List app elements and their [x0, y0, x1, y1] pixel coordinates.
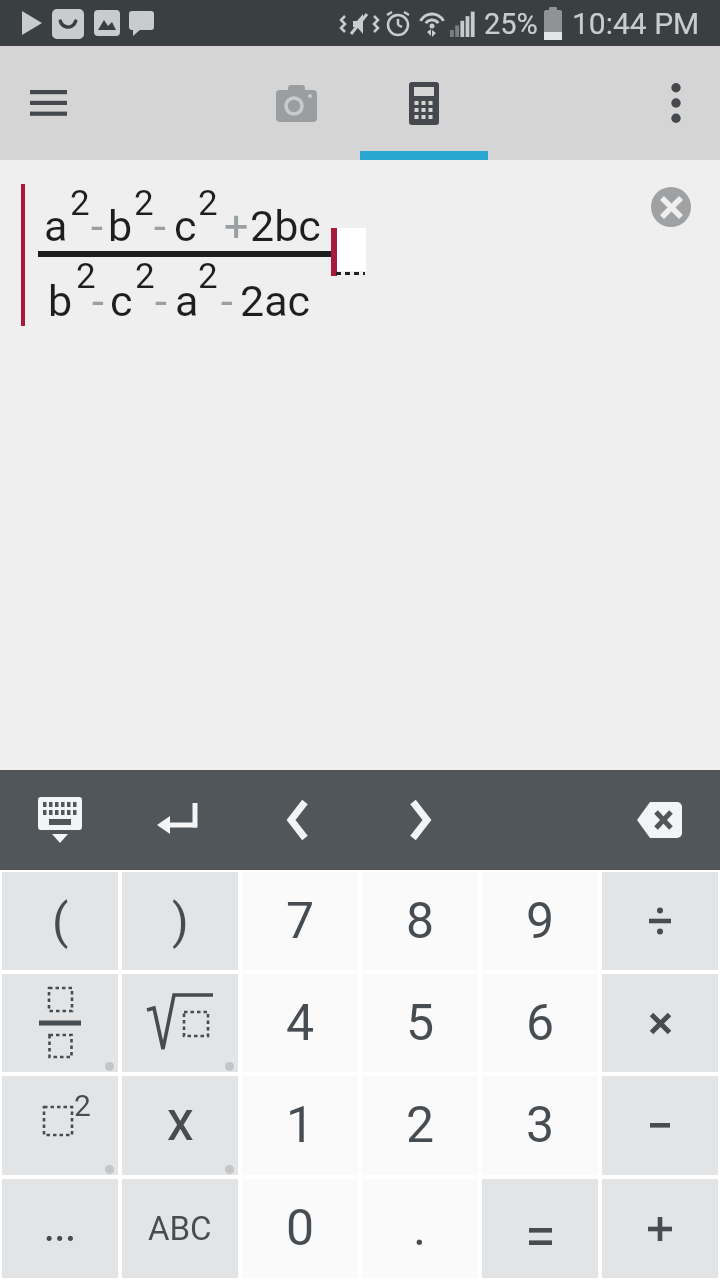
- staticText: 2: [198, 183, 218, 224]
- button[interactable]: [482, 1179, 598, 1278]
- button[interactable]: ): [122, 872, 238, 970]
- button[interactable]: [10, 770, 110, 870]
- staticText: 4: [286, 994, 315, 1053]
- button[interactable]: [654, 81, 698, 125]
- button[interactable]: [360, 46, 488, 160]
- button[interactable]: [602, 974, 718, 1072]
- button[interactable]: [2, 974, 118, 1072]
- staticText: 2ac: [240, 276, 311, 326]
- staticText: +: [224, 201, 249, 251]
- staticText: c: [110, 276, 133, 326]
- staticText: 25%: [484, 7, 538, 41]
- staticText: ...: [44, 1206, 76, 1251]
- button[interactable]: ABC: [122, 1179, 238, 1278]
- staticText: 2bc: [250, 201, 321, 251]
- button[interactable]: 1: [242, 1076, 358, 1175]
- staticText: 5: [406, 994, 435, 1053]
- button[interactable]: 5: [362, 974, 478, 1072]
- staticText: 2: [76, 256, 96, 297]
- staticText: 8: [406, 892, 435, 951]
- staticText: 7: [286, 892, 315, 951]
- button[interactable]: X: [122, 1076, 238, 1175]
- staticText: 2: [198, 256, 218, 297]
- button[interactable]: .: [362, 1179, 478, 1278]
- staticText: 2: [70, 183, 90, 224]
- button[interactable]: 8: [362, 872, 478, 970]
- staticText: 2: [134, 183, 154, 224]
- staticText: 2: [406, 1096, 435, 1155]
- staticText: 2: [74, 1088, 91, 1123]
- button[interactable]: [128, 770, 228, 870]
- button[interactable]: [602, 872, 718, 970]
- button[interactable]: [248, 770, 348, 870]
- staticText: .: [413, 1199, 427, 1258]
- button[interactable]: [609, 770, 709, 870]
- button[interactable]: 0: [242, 1179, 358, 1278]
- staticText: a: [175, 276, 199, 326]
- button[interactable]: 7: [242, 872, 358, 970]
- staticText: 1: [286, 1096, 315, 1155]
- staticText: -: [155, 276, 167, 326]
- button[interactable]: [602, 1076, 718, 1175]
- staticText: 6: [526, 994, 555, 1053]
- button[interactable]: 2: [2, 1076, 118, 1175]
- staticText: -: [221, 276, 233, 326]
- button[interactable]: 2: [362, 1076, 478, 1175]
- button[interactable]: [651, 187, 691, 227]
- staticText: -: [92, 276, 104, 326]
- button[interactable]: [370, 770, 470, 870]
- button[interactable]: [122, 974, 238, 1072]
- staticText: -: [154, 201, 166, 251]
- button[interactable]: 9: [482, 872, 598, 970]
- button[interactable]: 4: [242, 974, 358, 1072]
- staticText: -: [91, 201, 103, 251]
- button[interactable]: ...: [2, 1179, 118, 1278]
- staticText: 10:44 PM: [572, 6, 700, 41]
- button[interactable]: [232, 46, 360, 160]
- staticText: b: [48, 276, 73, 326]
- staticText: a: [44, 201, 68, 251]
- staticText: ABC: [148, 1209, 212, 1248]
- button[interactable]: (: [2, 872, 118, 970]
- staticText: X: [167, 1101, 194, 1150]
- staticText: c: [174, 201, 197, 251]
- staticText: 9: [526, 892, 555, 951]
- staticText: (: [52, 893, 69, 949]
- staticText: 0: [286, 1199, 315, 1258]
- button[interactable]: 6: [482, 974, 598, 1072]
- button[interactable]: 3: [482, 1076, 598, 1175]
- staticText: b: [108, 201, 133, 251]
- staticText: ): [172, 893, 189, 949]
- staticText: 3: [526, 1096, 555, 1155]
- button[interactable]: [14, 69, 82, 137]
- staticText: 2: [135, 256, 155, 297]
- button[interactable]: [602, 1179, 718, 1278]
